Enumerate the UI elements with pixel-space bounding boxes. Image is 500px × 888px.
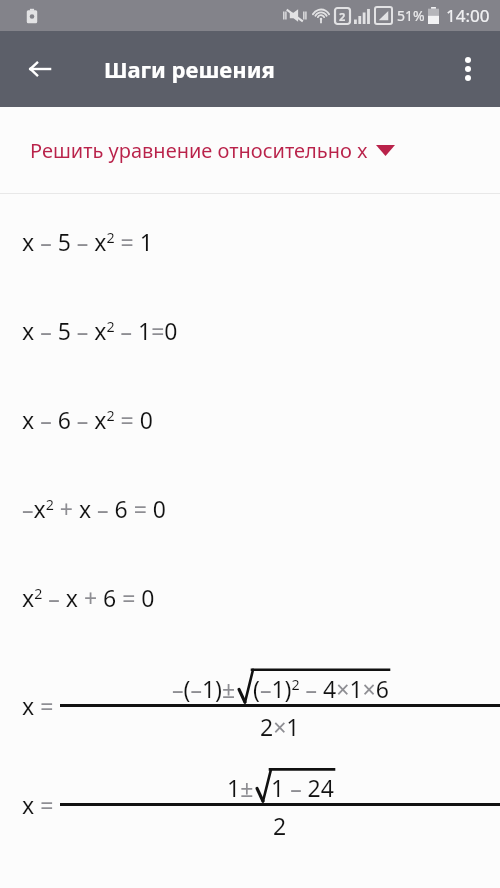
staticText: x =	[22, 690, 54, 721]
staticText: x – 5 – x2 – 1=0	[22, 315, 178, 346]
staticText: Шаги решения	[104, 54, 275, 84]
staticText: 51%	[397, 6, 425, 25]
staticText: –x2 + x – 6 = 0	[22, 493, 166, 524]
staticText: x =	[22, 789, 54, 820]
staticText: 14:00	[446, 4, 490, 27]
staticText: 2×1	[260, 711, 300, 742]
staticText: Решить уравнение относительно x	[30, 137, 368, 164]
button[interactable]: More options	[444, 45, 492, 93]
staticText: –(–1)±	[172, 673, 236, 704]
staticText: 1 – 24	[271, 772, 334, 803]
staticText: 1±	[227, 772, 254, 803]
staticText: x – 5 – x2 = 1	[22, 226, 153, 257]
staticText: 2	[339, 9, 346, 24]
button[interactable]: Решить уравнение относительно x	[0, 107, 500, 193]
staticText: 2	[273, 810, 287, 841]
staticText: x – 6 – x2 = 0	[22, 404, 153, 435]
staticText: x2 – x + 6 = 0	[22, 582, 155, 613]
button[interactable]: Back	[16, 45, 64, 93]
staticText: (–1)2 – 4×1×6	[253, 673, 389, 704]
